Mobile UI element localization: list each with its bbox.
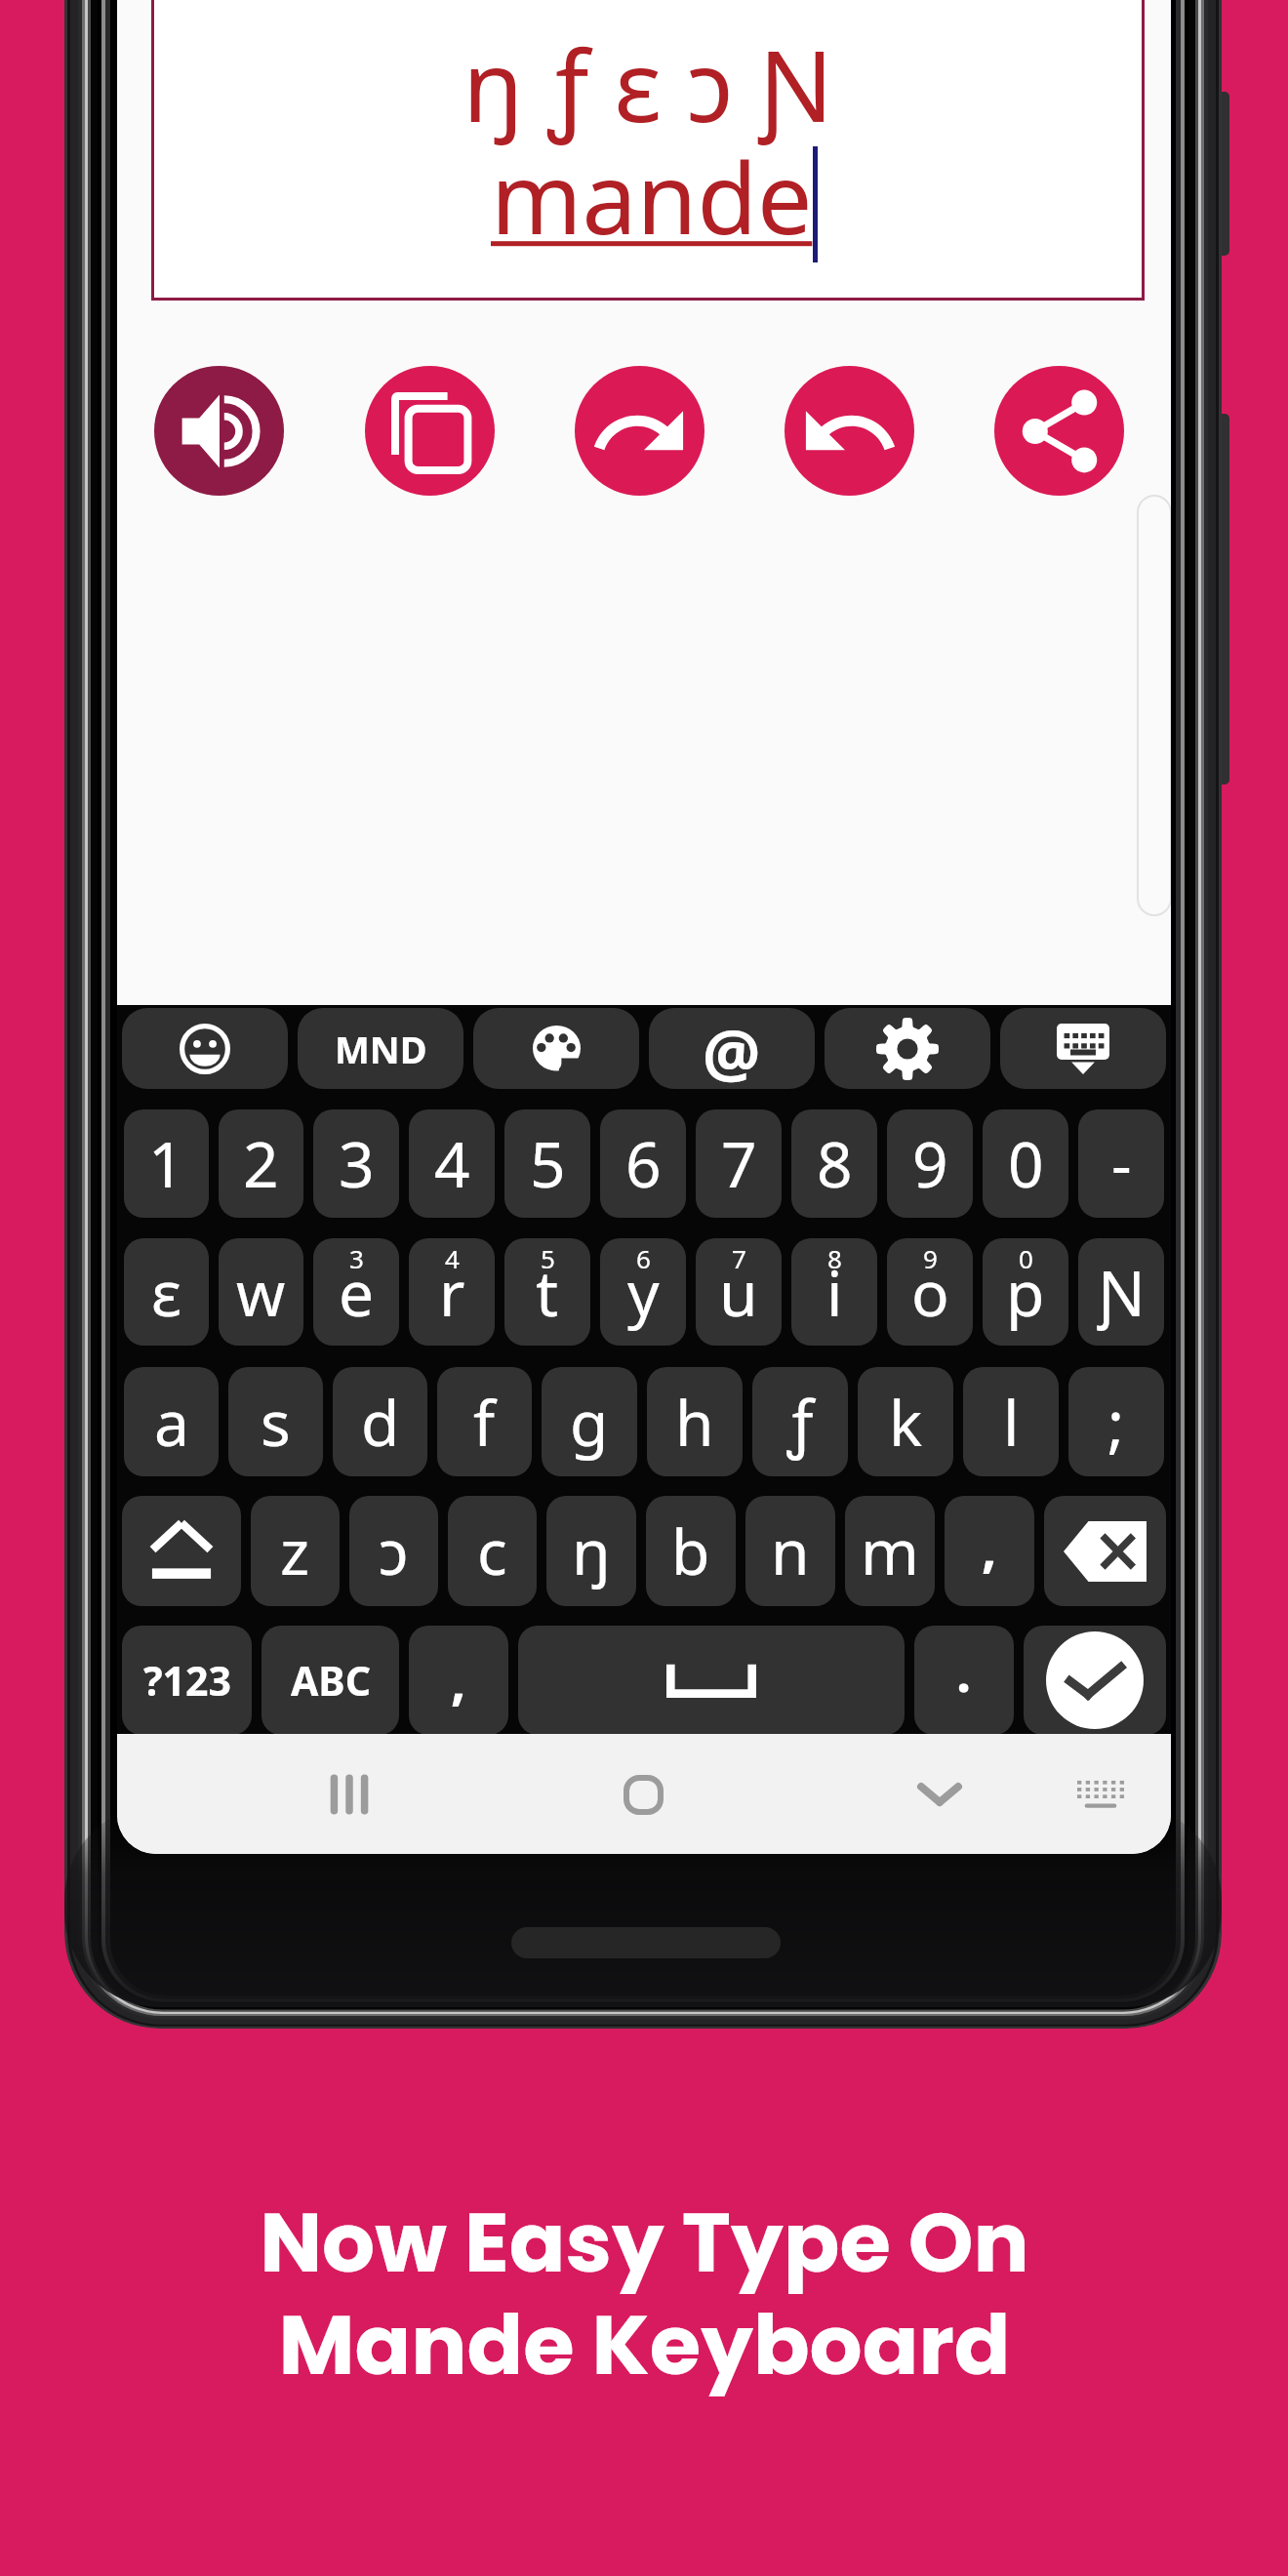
button[interactable]: 0 bbox=[983, 1109, 1068, 1218]
button[interactable]: f bbox=[437, 1367, 532, 1476]
staticText: m bbox=[861, 1509, 919, 1593]
button[interactable]: 8 bbox=[791, 1109, 877, 1218]
button[interactable]: Ɲ bbox=[1078, 1238, 1164, 1346]
staticText: z bbox=[280, 1509, 310, 1593]
button[interactable]: r bbox=[409, 1238, 495, 1346]
staticText: , bbox=[982, 1510, 997, 1583]
staticText: ɔ bbox=[379, 1509, 409, 1593]
button[interactable]: i bbox=[791, 1238, 877, 1346]
button[interactable]: Copy bbox=[365, 366, 495, 496]
button[interactable]: s bbox=[228, 1367, 323, 1476]
button[interactable]: ?123 bbox=[122, 1626, 252, 1735]
button[interactable]: , bbox=[409, 1626, 508, 1735]
button[interactable]: p bbox=[983, 1238, 1068, 1346]
staticText: mande bbox=[491, 130, 813, 262]
button[interactable]: d bbox=[333, 1367, 427, 1476]
button[interactable]: Emoji bbox=[122, 1008, 288, 1089]
button[interactable]: 5 bbox=[504, 1109, 590, 1218]
button[interactable]: - bbox=[1078, 1109, 1164, 1218]
button[interactable]: c bbox=[448, 1496, 537, 1606]
button[interactable]: y bbox=[600, 1238, 686, 1346]
staticText: a bbox=[154, 1380, 189, 1465]
staticText: 4 bbox=[434, 1121, 470, 1206]
staticText: t bbox=[536, 1250, 559, 1335]
button[interactable]: b bbox=[646, 1496, 736, 1606]
staticText: Mande Keyboard bbox=[278, 2287, 1011, 2403]
staticText: c bbox=[477, 1509, 507, 1593]
button[interactable]: ABC bbox=[262, 1626, 399, 1735]
button[interactable]: Settings bbox=[825, 1008, 990, 1089]
button[interactable]: @ bbox=[649, 1008, 815, 1089]
staticText: 2 bbox=[243, 1121, 279, 1206]
button[interactable]: 6 bbox=[600, 1109, 686, 1218]
button[interactable]: Theme bbox=[473, 1008, 639, 1089]
button[interactable]: 1 bbox=[124, 1109, 209, 1218]
button[interactable]: a bbox=[124, 1367, 219, 1476]
staticText: ABC bbox=[291, 1653, 371, 1708]
staticText: , bbox=[451, 1643, 466, 1715]
staticText: s bbox=[261, 1380, 291, 1465]
staticText: . bbox=[956, 1635, 972, 1708]
button[interactable]: 2 bbox=[219, 1109, 303, 1218]
staticText: 6 bbox=[636, 1241, 651, 1275]
button[interactable]: ; bbox=[1068, 1367, 1164, 1476]
button[interactable]: 3 bbox=[313, 1109, 399, 1218]
button[interactable]: Home bbox=[600, 1751, 686, 1837]
button[interactable]: e bbox=[313, 1238, 399, 1346]
staticText: MND bbox=[335, 1024, 427, 1074]
button[interactable]: 7 bbox=[696, 1109, 782, 1218]
staticText: Now Easy Type On bbox=[260, 2185, 1029, 2301]
button[interactable]: 4 bbox=[409, 1109, 495, 1218]
button[interactable]: ŋ bbox=[546, 1496, 636, 1606]
button[interactable]: l bbox=[963, 1367, 1059, 1476]
button[interactable] bbox=[1024, 1626, 1166, 1735]
button[interactable] bbox=[518, 1626, 905, 1735]
button[interactable]: Recents bbox=[306, 1751, 392, 1837]
button[interactable]: Keyboard bbox=[1058, 1751, 1144, 1837]
staticText: 0 bbox=[1019, 1241, 1033, 1275]
button[interactable]: Undo bbox=[785, 366, 914, 496]
button[interactable]: Share bbox=[994, 366, 1124, 496]
button[interactable]: Speak bbox=[154, 366, 284, 496]
staticText: 1 bbox=[148, 1121, 184, 1206]
button[interactable]: w bbox=[219, 1238, 303, 1346]
button[interactable]: . bbox=[914, 1626, 1014, 1735]
staticText: 7 bbox=[732, 1241, 746, 1275]
button[interactable]: ƒ bbox=[752, 1367, 848, 1476]
staticText: e bbox=[339, 1250, 375, 1335]
button[interactable]: ɛ bbox=[124, 1238, 209, 1346]
staticText: 3 bbox=[349, 1241, 364, 1275]
button[interactable]: u bbox=[696, 1238, 782, 1346]
button[interactable]: Redo bbox=[575, 366, 704, 496]
staticText: 8 bbox=[817, 1121, 853, 1206]
button[interactable]: MND bbox=[298, 1008, 463, 1089]
button[interactable]: 9 bbox=[887, 1109, 973, 1218]
button[interactable]: g bbox=[542, 1367, 637, 1476]
button[interactable]: , bbox=[945, 1496, 1034, 1606]
button[interactable]: m bbox=[845, 1496, 935, 1606]
button[interactable]: o bbox=[887, 1238, 973, 1346]
staticText: d bbox=[361, 1380, 400, 1465]
button[interactable]: h bbox=[647, 1367, 743, 1476]
button[interactable]: ɔ bbox=[349, 1496, 438, 1606]
staticText: i bbox=[826, 1250, 843, 1335]
staticText: u bbox=[719, 1250, 758, 1335]
staticText: ŋ bbox=[572, 1509, 611, 1593]
staticText: - bbox=[1111, 1121, 1132, 1206]
staticText: ɛ bbox=[151, 1250, 181, 1335]
button[interactable]: Hide keyboard bbox=[897, 1751, 983, 1837]
staticText: ; bbox=[1107, 1380, 1125, 1465]
staticText: 3 bbox=[339, 1121, 375, 1206]
button[interactable] bbox=[1044, 1496, 1166, 1606]
staticText: 8 bbox=[827, 1241, 842, 1275]
button[interactable] bbox=[122, 1496, 241, 1606]
staticText: ŋ ƒ ɛ ɔ Ɲ bbox=[463, 18, 833, 150]
button[interactable]: z bbox=[251, 1496, 340, 1606]
staticText: 4 bbox=[445, 1241, 460, 1275]
button[interactable]: t bbox=[504, 1238, 590, 1346]
button[interactable]: k bbox=[858, 1367, 953, 1476]
button[interactable]: n bbox=[745, 1496, 835, 1606]
staticText: b bbox=[671, 1509, 710, 1593]
button[interactable]: Hide keyboard bbox=[1000, 1008, 1166, 1089]
staticText: g bbox=[570, 1380, 609, 1465]
